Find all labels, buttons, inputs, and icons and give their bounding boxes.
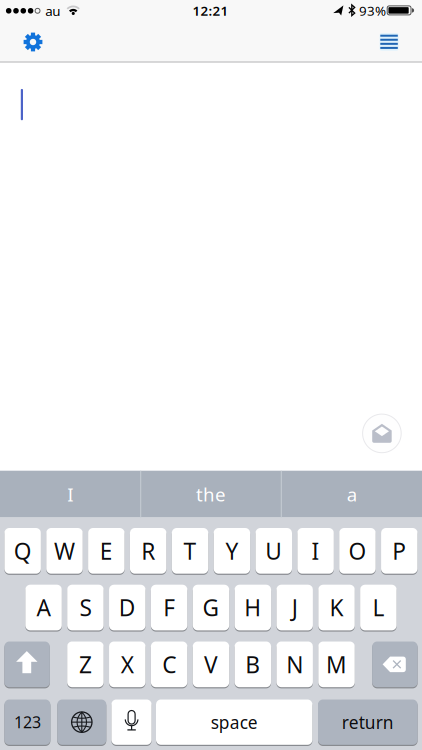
staticText: B bbox=[245, 649, 260, 679]
staticText: E bbox=[100, 536, 113, 566]
button[interactable]: the bbox=[141, 471, 281, 518]
button[interactable]: S bbox=[67, 585, 104, 630]
button[interactable]: R bbox=[130, 528, 166, 574]
button[interactable]: K bbox=[318, 585, 355, 630]
button[interactable]: E bbox=[88, 528, 125, 574]
button[interactable]: space bbox=[156, 699, 312, 745]
button[interactable]: 123 bbox=[4, 699, 50, 745]
staticText: X bbox=[121, 649, 134, 679]
staticText: the bbox=[196, 482, 226, 507]
button[interactable]: F bbox=[151, 585, 187, 630]
staticText: M bbox=[326, 649, 347, 679]
button[interactable] bbox=[57, 699, 106, 745]
staticText: P bbox=[392, 536, 406, 566]
staticText: K bbox=[329, 592, 343, 623]
staticText: I bbox=[67, 482, 73, 507]
button[interactable]: return bbox=[318, 699, 418, 745]
staticText: Z bbox=[79, 649, 92, 679]
staticText: R bbox=[141, 536, 155, 566]
button[interactable]: C bbox=[151, 641, 187, 687]
staticText: au bbox=[45, 2, 60, 20]
staticText: 12:21 bbox=[193, 2, 229, 19]
staticText: 123 bbox=[14, 711, 41, 733]
staticText: I bbox=[312, 536, 320, 566]
staticText: N bbox=[286, 649, 303, 679]
button[interactable]: T bbox=[172, 528, 208, 574]
button[interactable]: I bbox=[0, 471, 140, 518]
staticText: H bbox=[244, 592, 261, 623]
button[interactable]: P bbox=[381, 528, 418, 574]
button[interactable]: O bbox=[339, 528, 376, 574]
staticText: 93% bbox=[359, 2, 386, 19]
button[interactable]: M bbox=[318, 641, 355, 687]
staticText: C bbox=[162, 649, 176, 679]
staticText: V bbox=[204, 649, 218, 679]
button[interactable]: N bbox=[276, 641, 313, 687]
button[interactable]: I bbox=[297, 528, 334, 574]
staticText: S bbox=[79, 592, 91, 623]
staticText: return bbox=[342, 711, 394, 734]
button[interactable]: Y bbox=[214, 528, 250, 574]
button[interactable]: J bbox=[276, 585, 313, 630]
staticText: J bbox=[292, 592, 298, 623]
staticText: space bbox=[211, 711, 258, 734]
staticText: L bbox=[372, 592, 384, 623]
button[interactable]: H bbox=[235, 585, 271, 630]
button[interactable]: A bbox=[25, 585, 62, 630]
staticText: O bbox=[348, 536, 366, 566]
button[interactable]: U bbox=[255, 528, 292, 574]
staticText: D bbox=[119, 592, 136, 623]
button[interactable]: W bbox=[46, 528, 83, 574]
staticText: G bbox=[202, 592, 219, 623]
staticText: F bbox=[163, 592, 175, 623]
button[interactable]: B bbox=[235, 641, 271, 687]
staticText: T bbox=[184, 536, 197, 566]
button[interactable]: a bbox=[282, 471, 422, 518]
button[interactable]: Z bbox=[67, 641, 104, 687]
button[interactable] bbox=[4, 641, 50, 687]
button[interactable]: G bbox=[193, 585, 229, 630]
button[interactable] bbox=[111, 699, 152, 745]
staticText: a bbox=[347, 482, 357, 507]
button[interactable]: D bbox=[109, 585, 145, 630]
staticText: A bbox=[37, 592, 51, 623]
staticText: Q bbox=[14, 536, 32, 566]
button[interactable]: V bbox=[193, 641, 229, 687]
button[interactable] bbox=[11, 20, 55, 64]
staticText: W bbox=[54, 536, 75, 566]
button[interactable]: Q bbox=[4, 528, 41, 574]
button[interactable] bbox=[372, 641, 418, 687]
button[interactable] bbox=[360, 411, 404, 455]
button[interactable] bbox=[367, 20, 411, 64]
staticText: Y bbox=[225, 536, 238, 566]
button[interactable]: X bbox=[109, 641, 145, 687]
staticText: U bbox=[265, 536, 282, 566]
button[interactable]: L bbox=[360, 585, 397, 630]
